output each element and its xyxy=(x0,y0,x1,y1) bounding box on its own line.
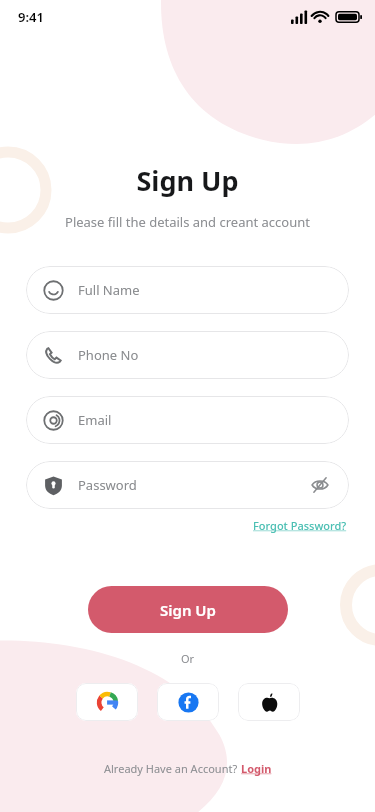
staticText: Login xyxy=(241,761,272,776)
staticText: Password xyxy=(78,476,308,494)
button[interactable]: Sign Up xyxy=(88,586,288,633)
staticText: Email xyxy=(78,411,332,429)
staticText: Phone No xyxy=(78,346,332,364)
staticText: Already Have an Account? xyxy=(104,761,241,776)
staticText: Please fill the details and creant accou… xyxy=(0,213,375,231)
button[interactable]: Sign up with Google xyxy=(76,683,138,721)
button[interactable]: Forgot Password? xyxy=(251,516,349,535)
button[interactable]: Password xyxy=(26,461,349,509)
button[interactable]: Sign up with Apple xyxy=(238,683,300,721)
button[interactable]: Full Name xyxy=(26,266,349,314)
staticText: Sign Up xyxy=(160,600,216,620)
button[interactable]: Sign up with Facebook xyxy=(157,683,219,721)
staticText: Full Name xyxy=(78,281,332,299)
staticText: 9:41 xyxy=(18,8,44,26)
button[interactable]: Toggle password visibility xyxy=(308,473,332,497)
button[interactable]: Phone No xyxy=(26,331,349,379)
button[interactable]: Email xyxy=(26,396,349,444)
staticText: Or xyxy=(0,651,375,666)
button[interactable]: Login xyxy=(241,761,272,776)
staticText: Sign Up xyxy=(0,162,375,199)
staticText: Forgot Password? xyxy=(253,518,347,533)
